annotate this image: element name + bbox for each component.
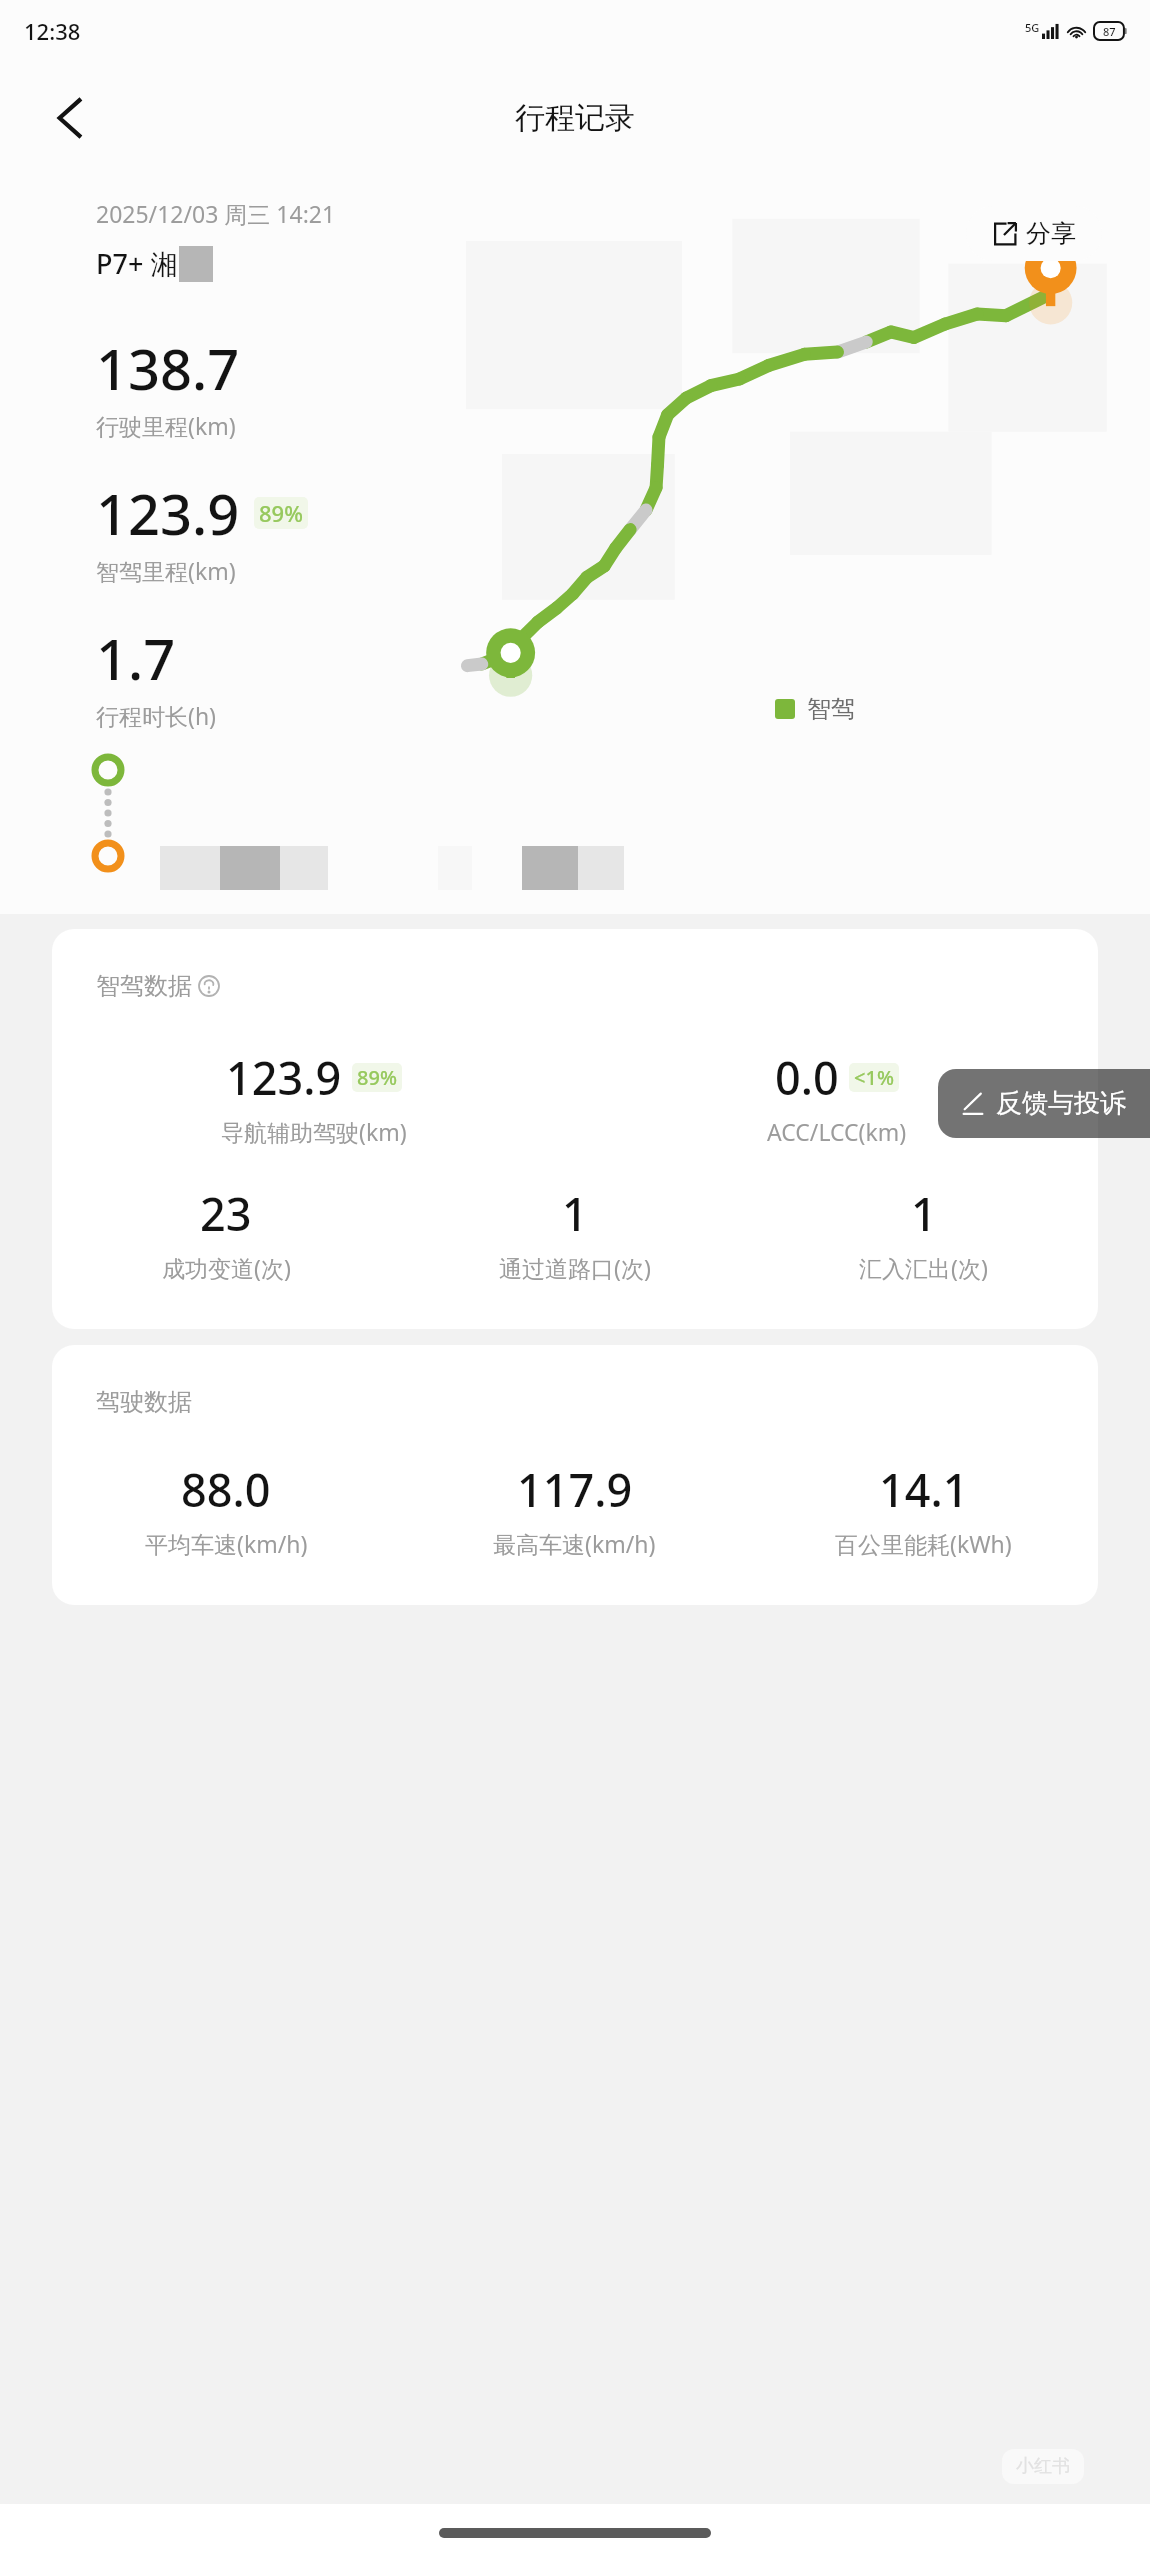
button[interactable]: 反馈与投诉 xyxy=(938,1069,1150,1138)
staticText: 智驾 xyxy=(807,694,855,724)
staticText: 5G xyxy=(1025,20,1040,35)
staticText: 行驶里程(km) xyxy=(96,410,236,441)
staticText: 23 xyxy=(200,1183,252,1244)
staticText: 87 xyxy=(1103,24,1116,39)
staticText: 0.0 xyxy=(775,1047,839,1108)
button[interactable]: 分享 xyxy=(966,206,1102,261)
staticText: 1 xyxy=(911,1183,937,1244)
staticText: 138.7 xyxy=(96,330,240,406)
staticText: 88.0 xyxy=(181,1459,271,1520)
staticText: 1.7 xyxy=(96,620,176,696)
staticText: 百公里能耗(kWh) xyxy=(835,1528,1012,1559)
staticText: 89% xyxy=(259,498,303,528)
staticText: 导航辅助驾驶(km) xyxy=(221,1116,407,1147)
staticText: 12:38 xyxy=(24,16,81,46)
staticText: <1% xyxy=(854,1064,894,1091)
staticText: 1 xyxy=(562,1183,588,1244)
staticText: P7+ 湘 xyxy=(96,245,178,282)
staticText: 123.9 xyxy=(226,1047,342,1108)
staticText: 117.9 xyxy=(517,1459,633,1520)
staticText: 2025/12/03 周三 14:21 xyxy=(96,198,336,229)
staticText: 成功变道(次) xyxy=(162,1252,291,1283)
staticText: 汇入汇出(次) xyxy=(859,1252,988,1283)
staticText: 智驾里程(km) xyxy=(96,555,236,586)
staticText: 驾驶数据 xyxy=(96,1387,192,1417)
staticText: 小红书 xyxy=(1016,2455,1070,2478)
staticText: 123.9 xyxy=(96,475,240,551)
staticText: 行程时长(h) xyxy=(96,700,217,731)
button[interactable]: Back xyxy=(44,92,96,144)
staticText: 14.1 xyxy=(879,1459,969,1520)
staticText: 89% xyxy=(357,1064,397,1091)
staticText: 平均车速(km/h) xyxy=(145,1528,308,1559)
staticText: ACC/LCC(km) xyxy=(767,1116,907,1147)
staticText: 行程记录 xyxy=(515,99,635,137)
staticText: 反馈与投诉 xyxy=(996,1087,1126,1120)
staticText: 通过道路口(次) xyxy=(499,1252,651,1283)
staticText: 智驾数据 xyxy=(96,971,192,1001)
staticText: 最高车速(km/h) xyxy=(493,1528,656,1559)
staticText: 分享 xyxy=(1026,218,1076,249)
